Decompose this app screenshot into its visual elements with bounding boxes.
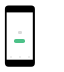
button[interactable]: Tab: [15, 54, 24, 59]
button[interactable]: [14, 39, 25, 43]
button[interactable]: Tab: [24, 54, 33, 59]
button[interactable]: Tab: [7, 54, 15, 59]
